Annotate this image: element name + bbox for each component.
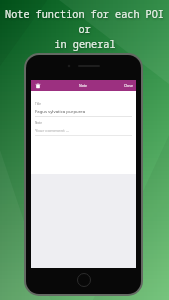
button[interactable]: Close [124,83,133,88]
button[interactable]: Delete note [34,82,42,90]
staticText: in general [54,37,116,51]
staticText: Your comment ... [35,127,70,133]
staticText: Title [35,102,41,106]
button[interactable]: Home [76,272,92,288]
staticText: Fagus sylvatica purpurea [35,108,86,114]
button[interactable]: Note [35,121,132,136]
staticText: Note [35,121,42,125]
staticText: Note [79,83,88,88]
staticText: or [78,22,91,36]
button[interactable]: Title [35,102,132,117]
staticText: Note function for each POI [5,7,164,21]
staticText: Close [124,83,133,88]
